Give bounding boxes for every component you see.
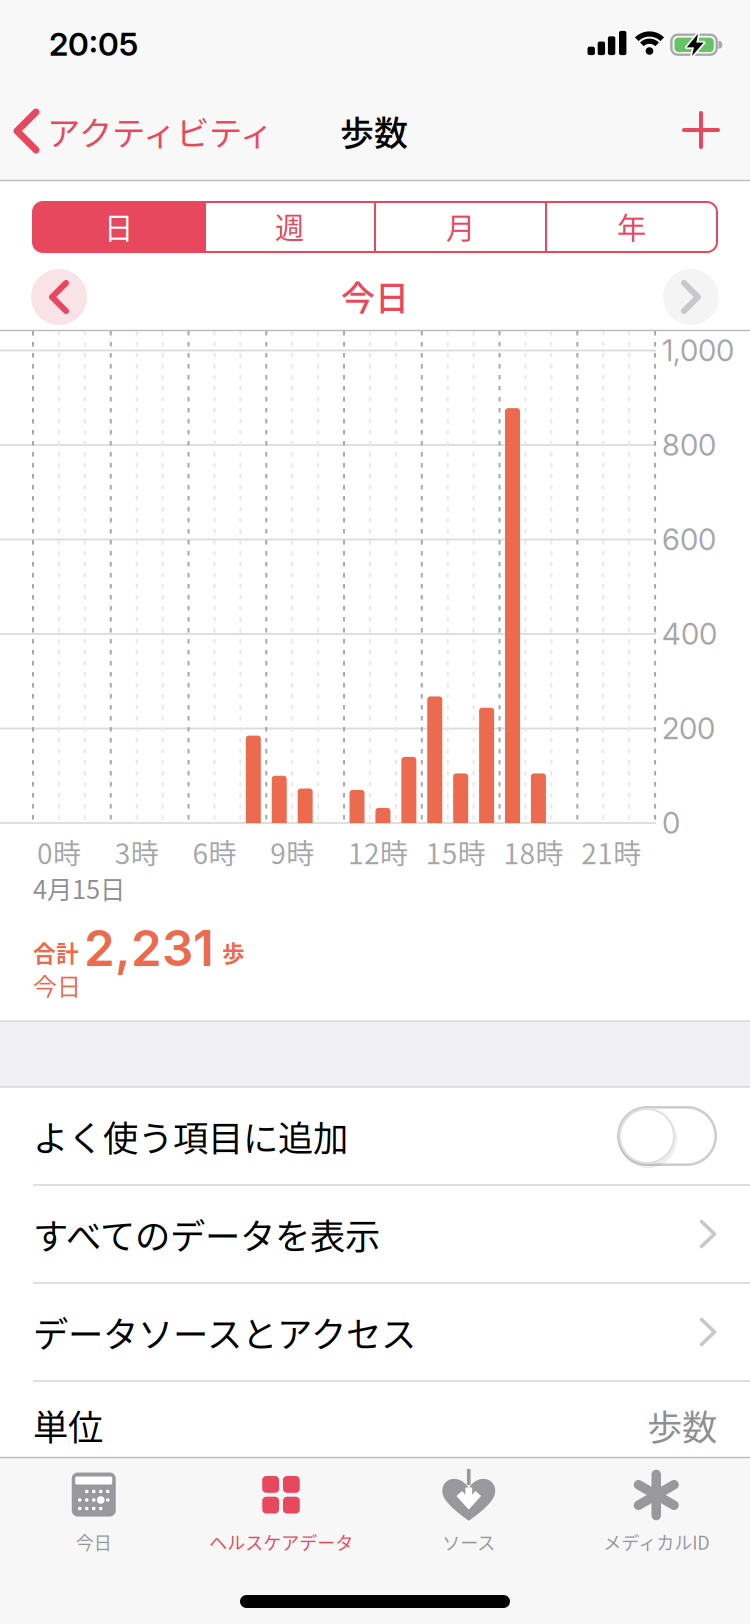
staticText: 20:05: [49, 25, 138, 63]
staticText: 6時: [192, 832, 236, 872]
staticText: 18時: [504, 832, 564, 872]
staticText: ヘルスケアデータ: [209, 1529, 353, 1555]
staticText: 15時: [426, 832, 486, 872]
staticText: 歩数: [340, 106, 408, 156]
staticText: 600: [662, 522, 716, 557]
staticText: ソース: [442, 1529, 495, 1555]
staticText: メディカルID: [603, 1529, 709, 1555]
staticText: 週: [275, 205, 304, 247]
staticText: 12時: [348, 832, 408, 872]
button[interactable]: よく使う項目に追加: [0, 1087, 750, 1185]
button[interactable]: 年: [546, 201, 717, 251]
button[interactable]: すべてのデータを表示: [0, 1185, 750, 1283]
staticText: 日: [104, 205, 133, 247]
button[interactable]: 次の日: [663, 269, 719, 325]
button[interactable]: 単位: [0, 1381, 750, 1469]
staticText: 0: [662, 805, 680, 841]
staticText: 年: [617, 205, 646, 247]
button[interactable]: 日: [33, 201, 204, 251]
staticText: 歩数: [647, 1399, 717, 1451]
staticText: 今日: [341, 271, 409, 321]
button[interactable]: 今日: [0, 1457, 187, 1567]
button[interactable]: 週: [204, 201, 375, 251]
button[interactable]: アクティビティ: [17, 100, 317, 162]
staticText: 0時: [37, 832, 81, 872]
staticText: データソースとアクセス: [33, 1306, 416, 1358]
button[interactable]: メディカルID: [562, 1457, 750, 1567]
staticText: 歩: [222, 936, 245, 968]
button[interactable]: ヘルスケアデータ: [187, 1457, 375, 1567]
button[interactable]: 追加: [674, 103, 728, 157]
staticText: 400: [662, 616, 717, 652]
staticText: 2,231: [84, 918, 214, 978]
staticText: よく使う項目に追加: [33, 1110, 348, 1162]
staticText: 単位: [33, 1399, 103, 1451]
staticText: 今日: [76, 1529, 112, 1555]
staticText: 21時: [581, 832, 641, 872]
staticText: すべてのデータを表示: [33, 1208, 380, 1260]
staticText: 1,000: [662, 333, 734, 368]
button[interactable]: ソース: [375, 1457, 562, 1567]
button[interactable]: データソースとアクセス: [0, 1283, 750, 1381]
staticText: 9時: [270, 832, 314, 872]
staticText: 合計: [33, 936, 79, 968]
staticText: 3時: [115, 832, 159, 872]
staticText: 800: [662, 427, 716, 463]
button[interactable]: 前の日: [31, 269, 87, 325]
staticText: 今日: [33, 968, 81, 1002]
staticText: 4月15日: [33, 870, 125, 906]
staticText: アクティビティ: [47, 107, 273, 155]
button[interactable]: 月: [375, 201, 546, 251]
staticText: 200: [662, 711, 715, 746]
staticText: 月: [446, 205, 475, 247]
